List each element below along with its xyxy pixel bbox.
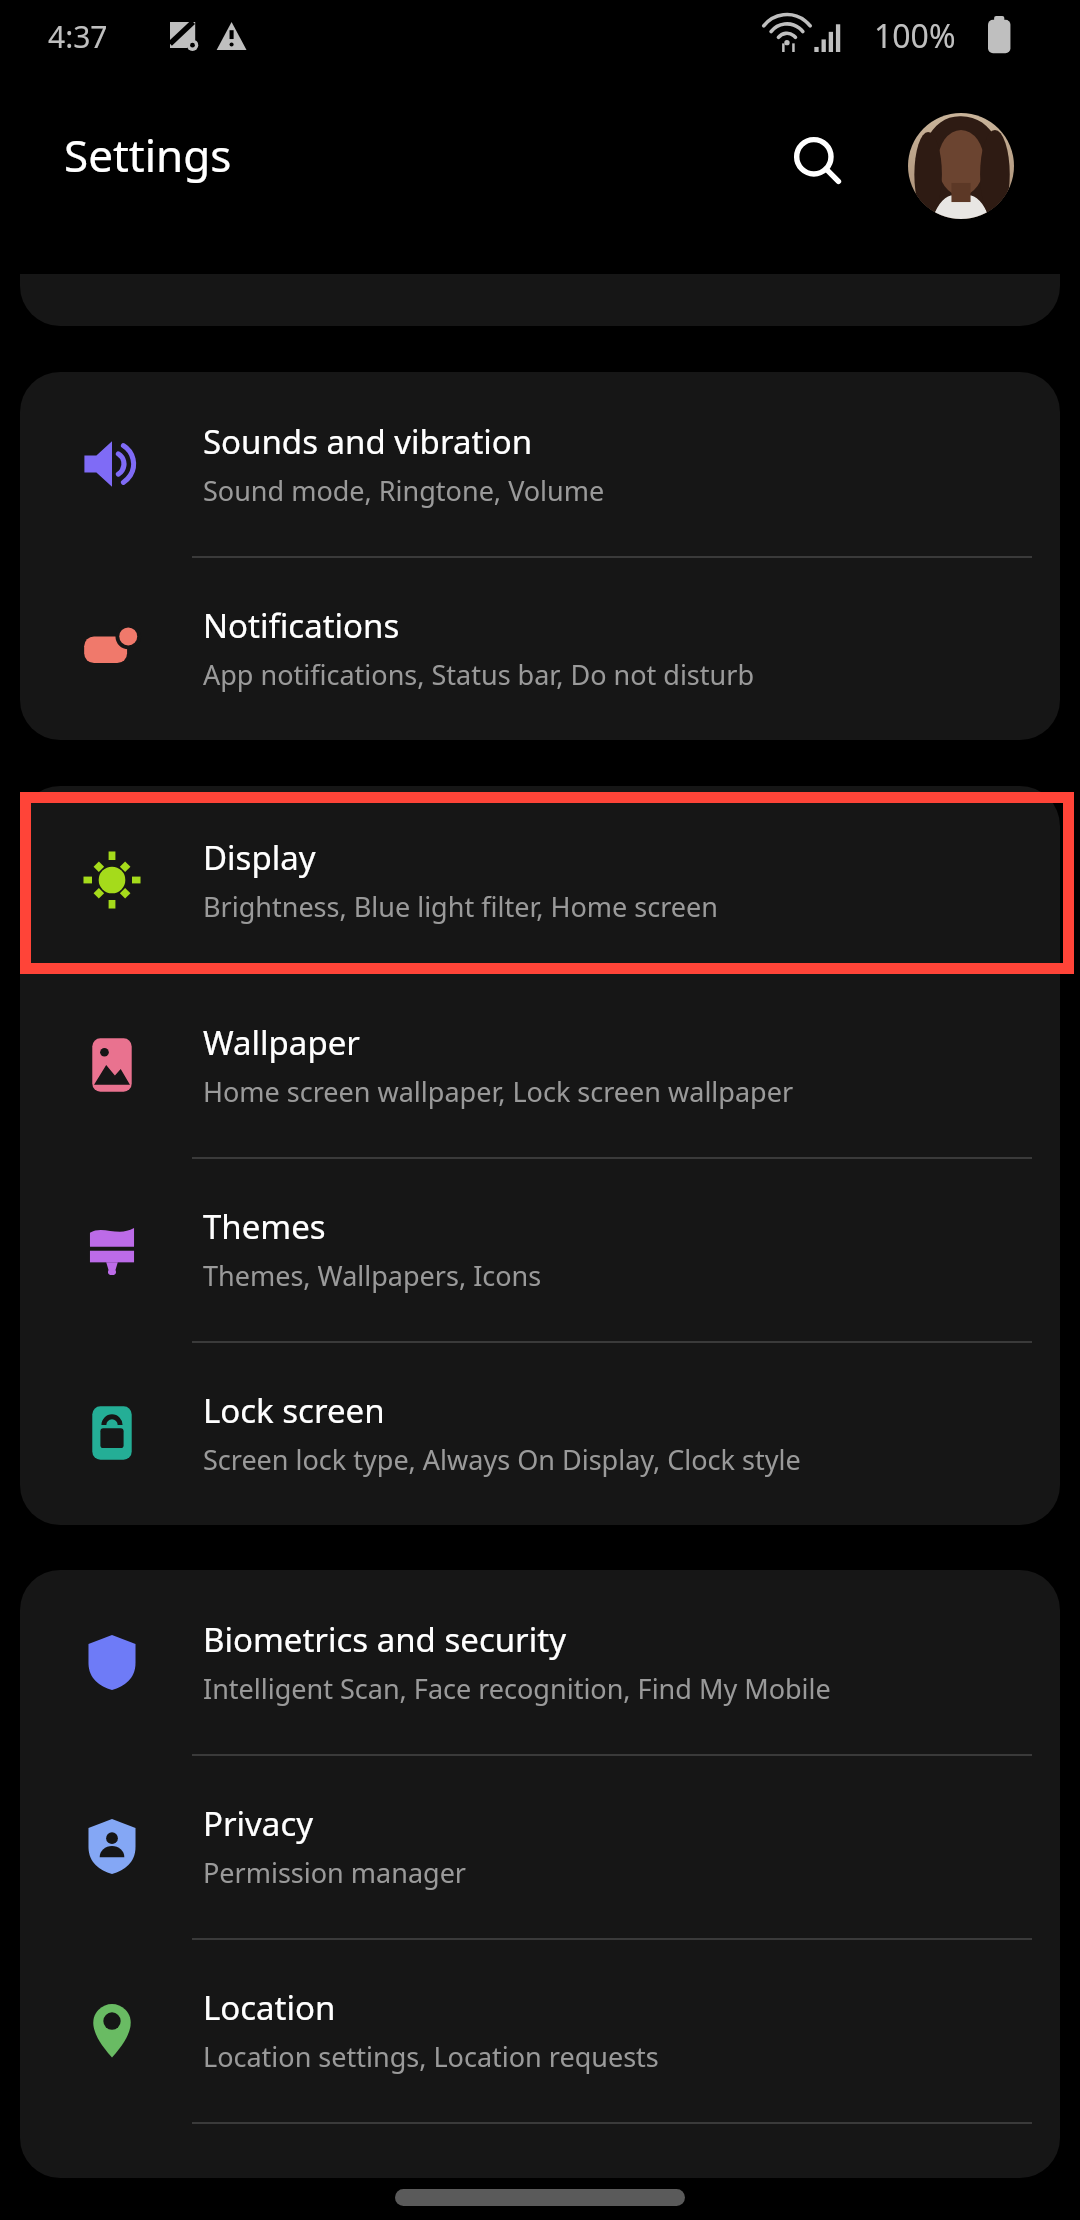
staticText: Sounds and vibration (203, 419, 533, 464)
staticText: Permission manager (203, 1854, 467, 1891)
staticText: Themes, Wallpapers, Icons (203, 1257, 542, 1294)
button[interactable]: Location (20, 1938, 1060, 2122)
button[interactable]: Lock screen (20, 1341, 1060, 1525)
button[interactable]: Wallpaper (20, 973, 1060, 1157)
staticText: Intelligent Scan, Face recognition, Find… (203, 1670, 831, 1707)
staticText: Privacy (203, 1801, 314, 1846)
staticText: Lock screen (203, 1388, 385, 1433)
staticText: Wallpaper (203, 1020, 360, 1065)
button[interactable]: Themes (20, 1157, 1060, 1341)
staticText: Biometrics and security (203, 1617, 566, 1662)
staticText: App notifications, Status bar, Do not di… (203, 656, 754, 693)
staticText: Screen lock type, Always On Display, Clo… (203, 1441, 801, 1478)
staticText: Sound mode, Ringtone, Volume (203, 472, 605, 509)
button[interactable]: Sounds and vibration (20, 372, 1060, 556)
staticText: Notifications (203, 603, 400, 648)
staticText: Location settings, Location requests (203, 2038, 659, 2075)
staticText: Themes (203, 1204, 326, 1249)
staticText: Settings (64, 125, 232, 185)
button[interactable]: Search (772, 116, 864, 208)
button[interactable]: Display (20, 786, 1060, 973)
staticText: Location (203, 1985, 336, 2030)
staticText: 4:37 (48, 16, 108, 57)
button[interactable]: Notifications (20, 556, 1060, 740)
button[interactable]: Privacy (20, 1754, 1060, 1938)
staticText: Home screen wallpaper, Lock screen wallp… (203, 1073, 794, 1110)
staticText: 100% (874, 14, 956, 58)
button[interactable]: Biometrics and security (20, 1570, 1060, 1754)
staticText: Display (203, 835, 316, 880)
button[interactable]: Profile (908, 113, 1014, 219)
staticText: Brightness, Blue light filter, Home scre… (203, 888, 718, 925)
